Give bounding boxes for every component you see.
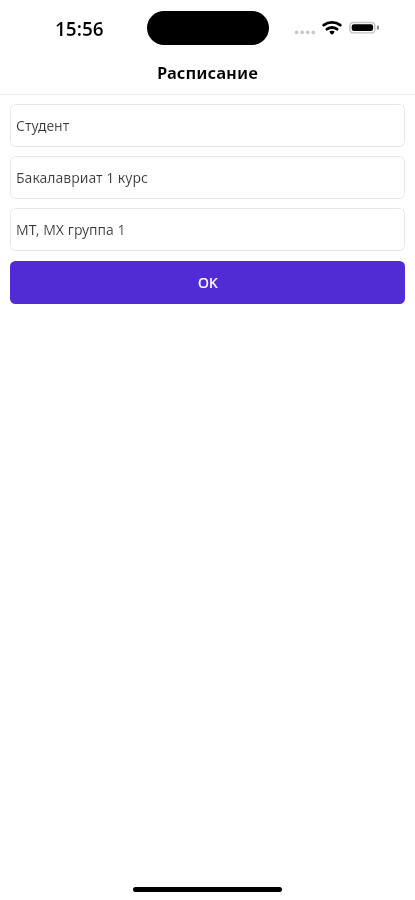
staticText: OK [198, 273, 218, 292]
button[interactable]: МТ, МХ группа 1 [10, 208, 405, 251]
staticText: Бакалавриат 1 курс [16, 168, 148, 187]
staticText: Студент [16, 116, 70, 135]
other: Dynamic Island [147, 11, 269, 45]
staticText: МТ, МХ группа 1 [16, 220, 126, 239]
button[interactable]: OK [10, 261, 405, 304]
button[interactable]: Бакалавриат 1 курс [10, 156, 405, 199]
button[interactable]: Студент [10, 104, 405, 147]
other: Signal, Wi-Fi and battery status [0, 0, 415, 54]
staticText: Расписание [157, 61, 258, 84]
staticText: 15:56 [55, 16, 104, 42]
